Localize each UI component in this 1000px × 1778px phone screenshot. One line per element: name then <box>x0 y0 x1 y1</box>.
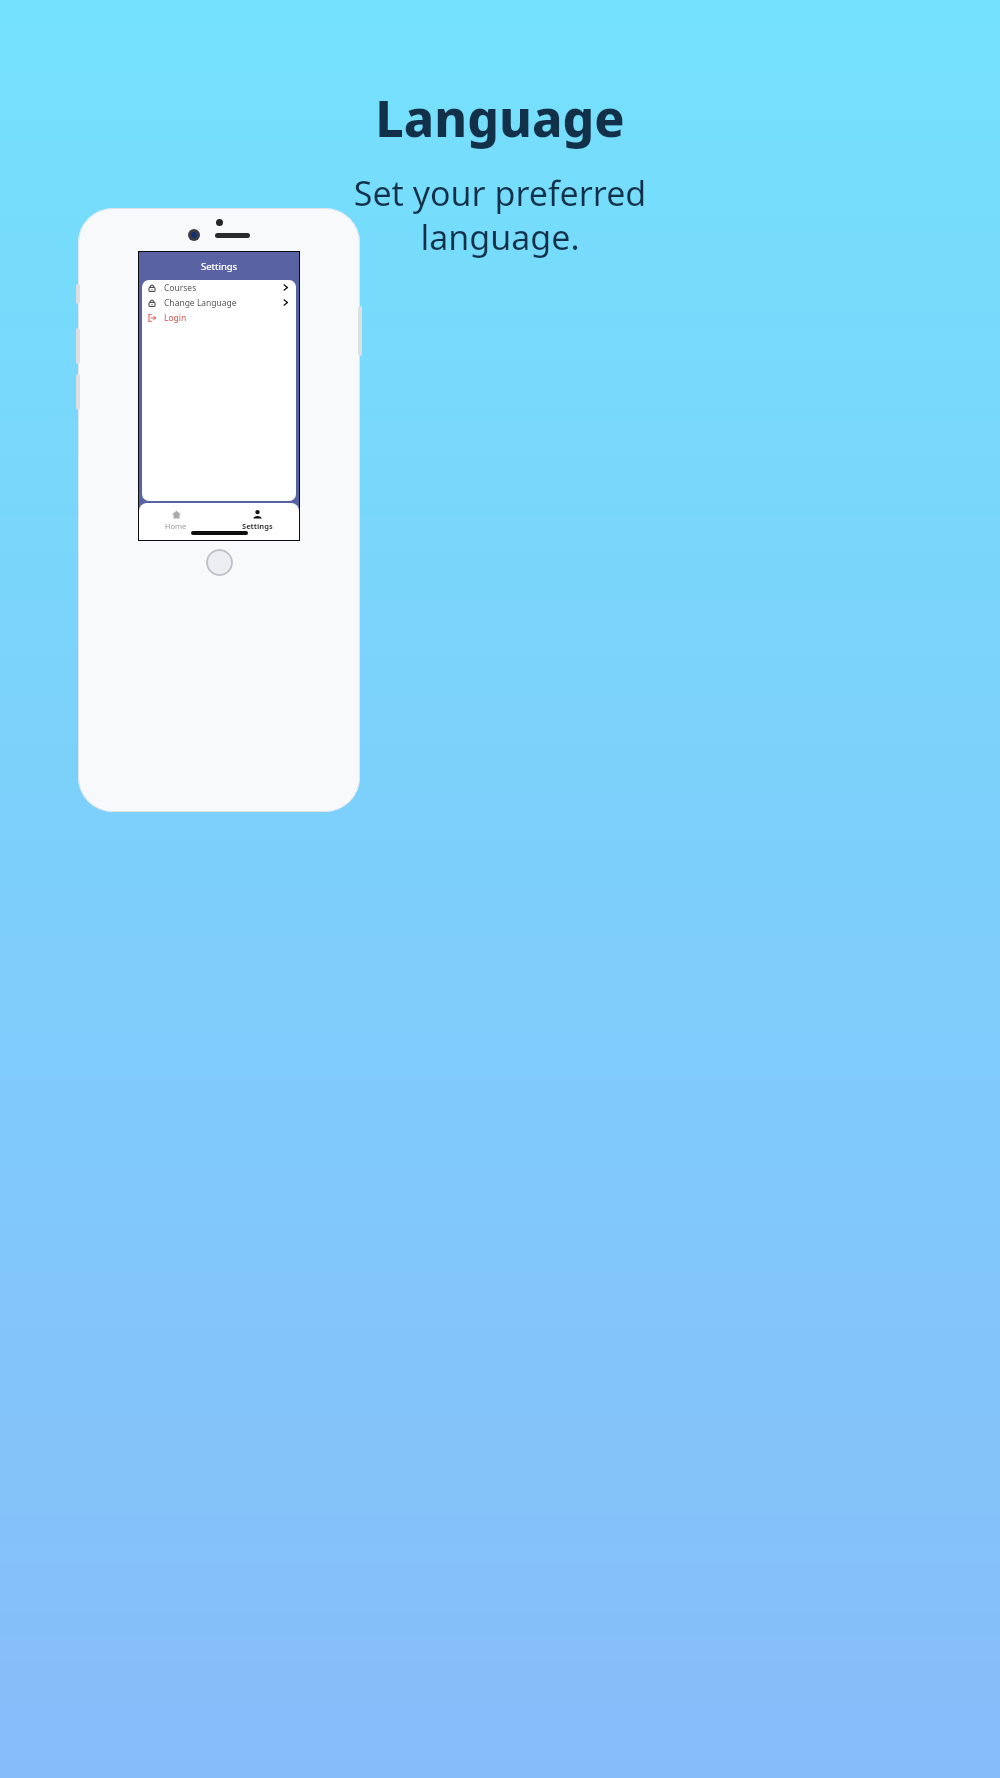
button[interactable]: Login <box>142 310 296 325</box>
button[interactable]: Home <box>157 508 195 532</box>
staticText: Change Language <box>164 297 237 309</box>
staticText: Settings <box>201 260 238 273</box>
staticText: Courses <box>164 282 197 294</box>
button[interactable]: Change Language <box>142 295 296 310</box>
staticText: Language <box>375 84 625 152</box>
button[interactable]: Courses <box>142 280 296 295</box>
button[interactable]: Settings <box>234 508 281 532</box>
other: Home <box>171 509 182 520</box>
other: Settings <box>252 509 263 520</box>
staticText: Settings <box>242 521 273 531</box>
staticText: Login <box>164 312 187 324</box>
staticText: Home <box>165 521 187 531</box>
staticText: Set your preferred language. <box>350 170 650 260</box>
